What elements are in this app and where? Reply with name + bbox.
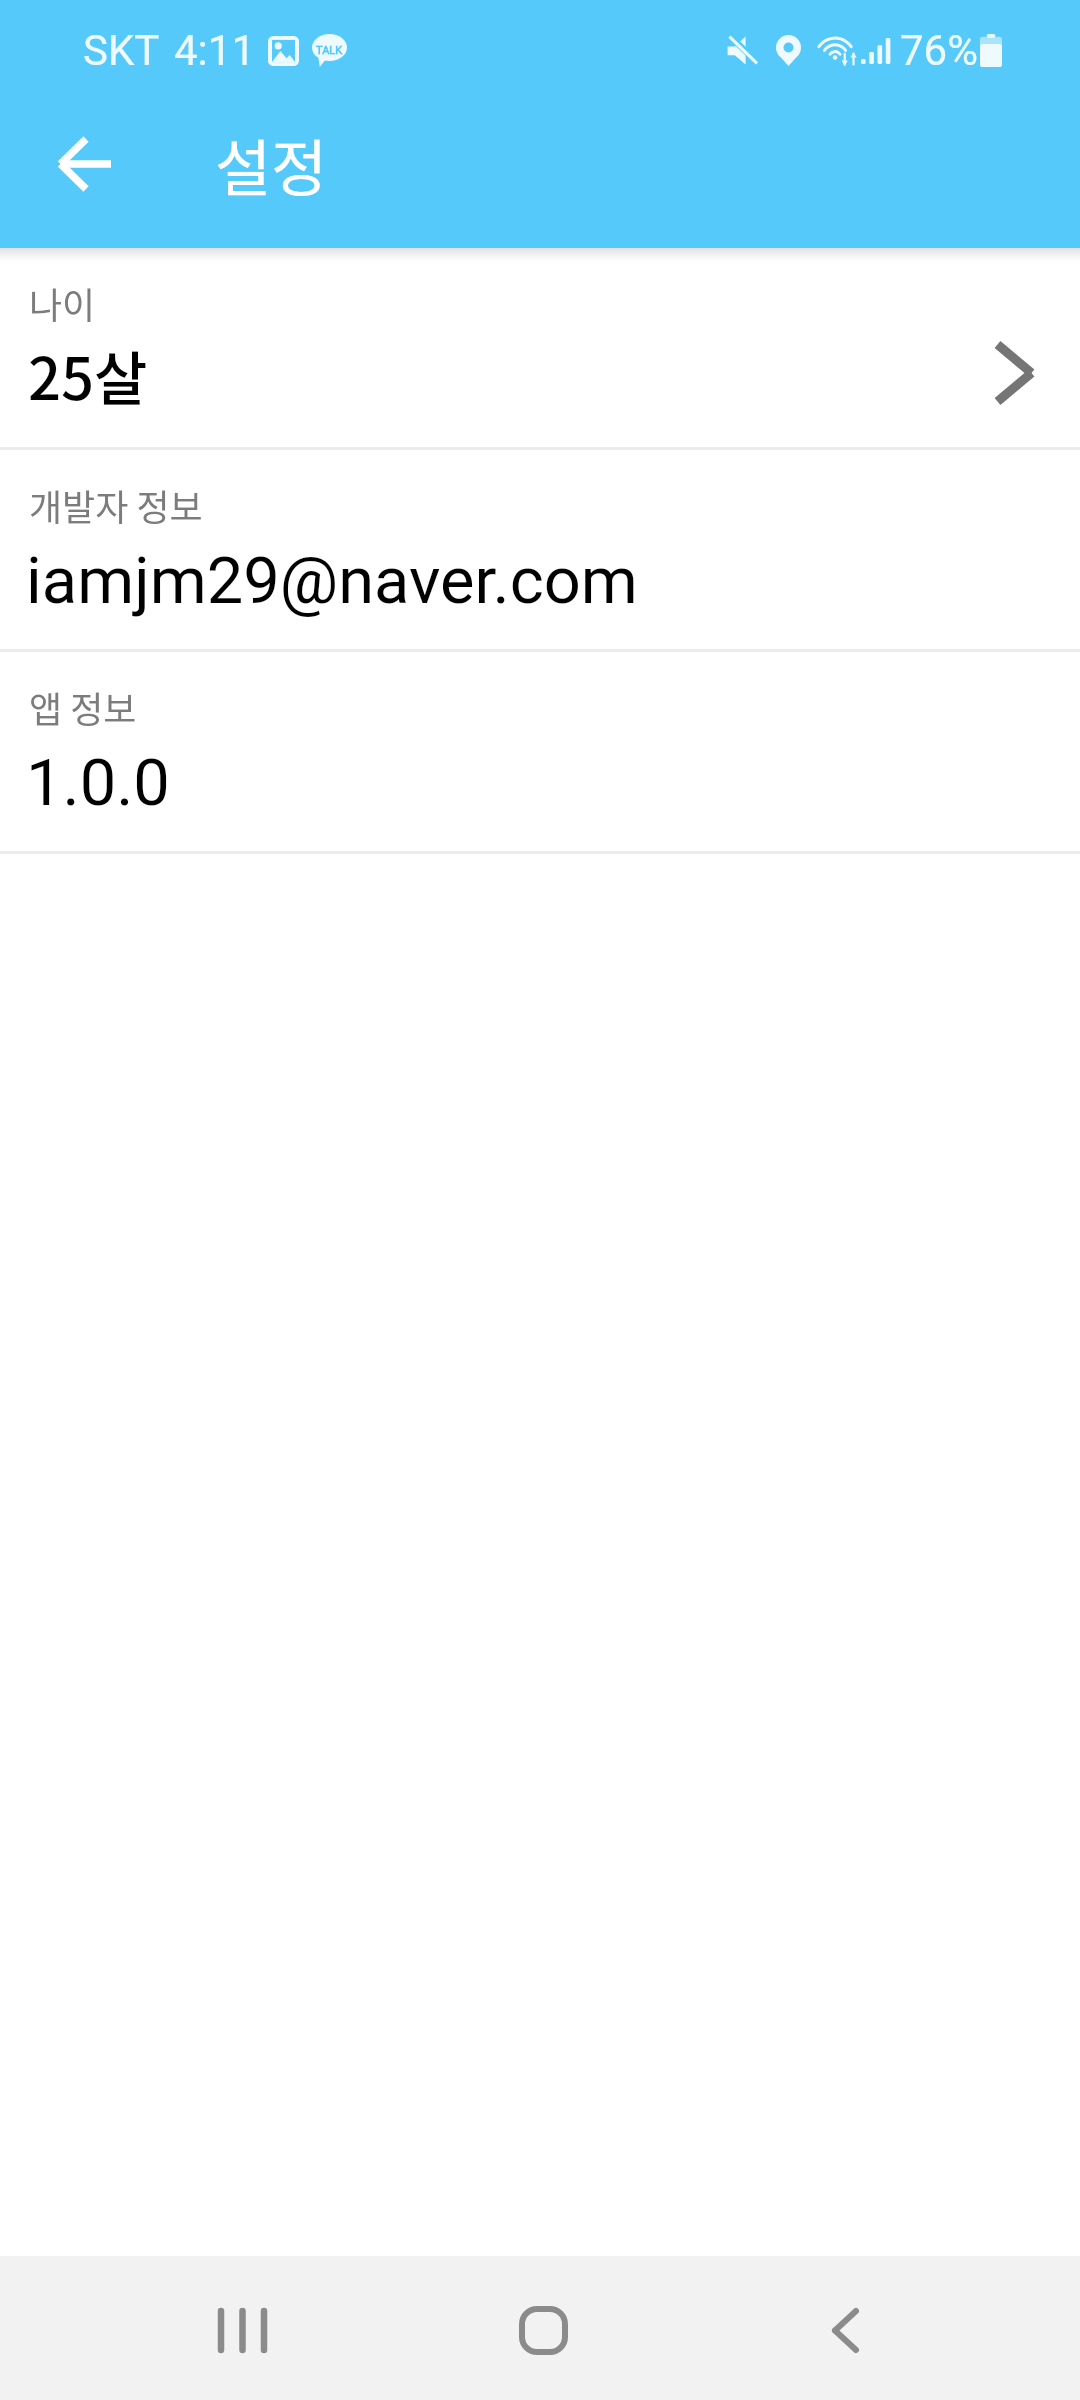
button[interactable]: 개발자 정보 (0, 450, 1080, 652)
staticText: SKT (83, 26, 160, 75)
staticText: 앱 정보 (29, 681, 137, 733)
staticText: 개발자 정보 (29, 479, 203, 531)
button[interactable]: Recent apps (150, 2256, 330, 2400)
button[interactable]: Back (20, 99, 150, 229)
button[interactable]: 나이 (0, 248, 1080, 450)
button[interactable]: 앱 정보 (0, 652, 1080, 854)
staticText: 25살 (28, 333, 148, 417)
staticText: iamjm29@naver.com (26, 543, 638, 619)
staticText: 76% (900, 26, 978, 75)
staticText: 4:11 (174, 26, 255, 75)
staticText: TALK (316, 44, 343, 57)
button[interactable]: Back (755, 2256, 935, 2400)
button[interactable]: Home (453, 2256, 633, 2400)
staticText: 나이 (29, 277, 96, 329)
staticText: 설정 (215, 120, 328, 208)
staticText: 1.0.0 (26, 745, 170, 821)
